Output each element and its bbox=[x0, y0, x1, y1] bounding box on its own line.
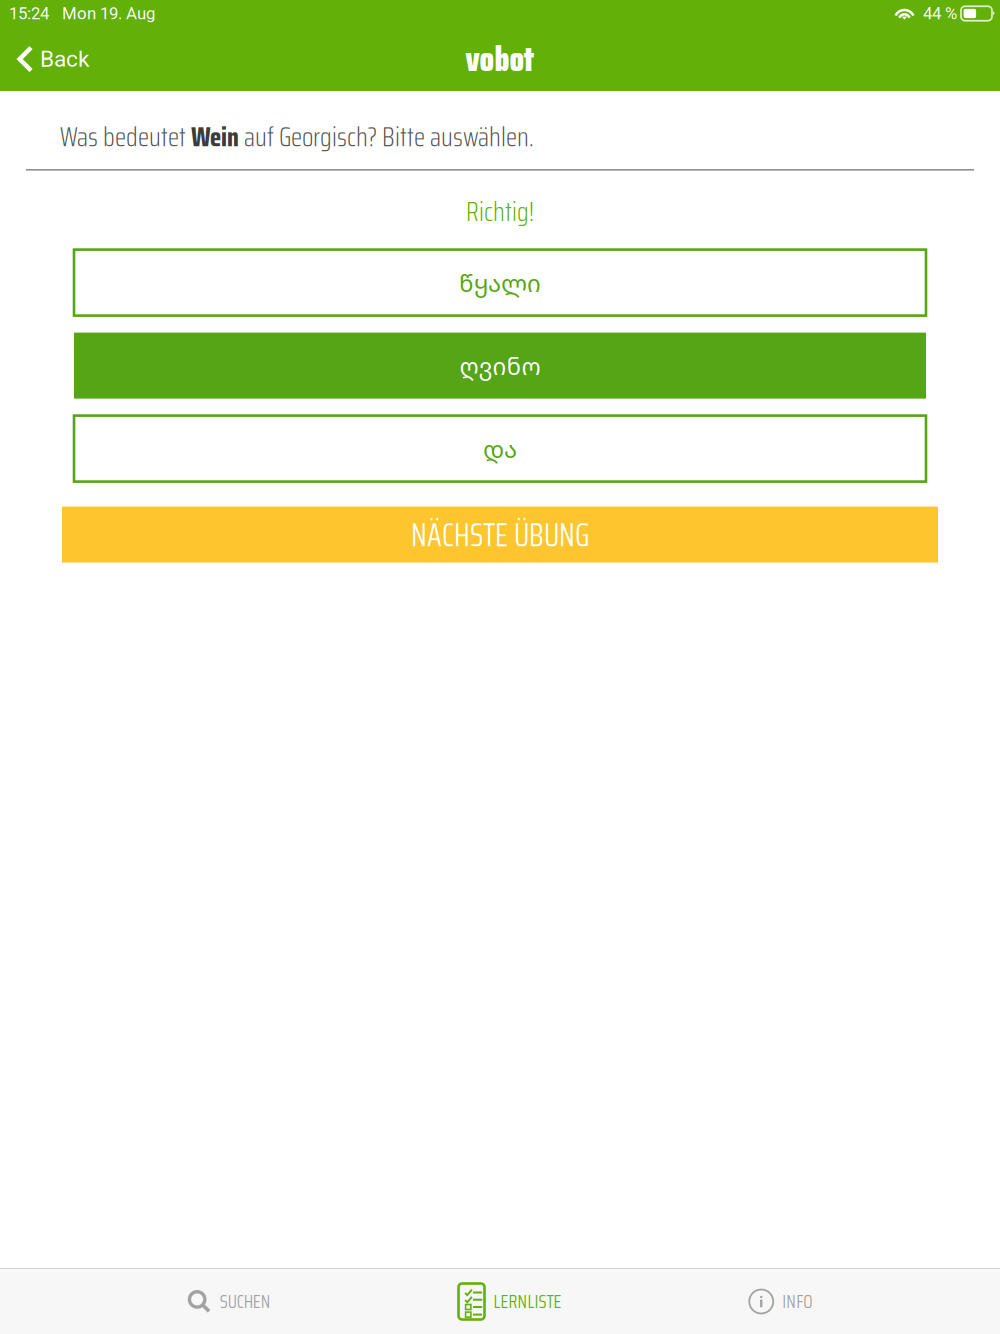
button[interactable]: NÄCHSTE ÜBUNG bbox=[62, 507, 938, 563]
staticText: vobot bbox=[465, 32, 534, 86]
staticText: INFO bbox=[782, 1287, 812, 1316]
staticText: LERNLISTE bbox=[493, 1287, 561, 1316]
button[interactable]: LERNLISTE bbox=[458, 1269, 561, 1334]
staticText: წყალი bbox=[459, 266, 541, 299]
button[interactable]: ღვინო bbox=[74, 333, 926, 399]
button[interactable]: წყალი bbox=[74, 250, 926, 316]
staticText: NÄCHSTE ÜBUNG bbox=[411, 508, 589, 561]
staticText: Was bedeutet bbox=[60, 116, 191, 158]
staticText: SUCHEN bbox=[220, 1287, 271, 1316]
staticText: Wein bbox=[191, 116, 239, 158]
button[interactable]: INFO bbox=[749, 1269, 812, 1334]
staticText: Richtig! bbox=[466, 191, 534, 233]
staticText: და bbox=[483, 432, 517, 465]
staticText: 15:24 bbox=[9, 4, 49, 23]
staticText: ღვინო bbox=[459, 349, 540, 382]
staticText: auf Georgisch? Bitte auswählen. bbox=[239, 116, 534, 158]
staticText: Mon 19. Aug bbox=[62, 4, 155, 23]
button[interactable]: და bbox=[74, 416, 926, 482]
staticText: Back bbox=[40, 46, 89, 72]
button[interactable]: SUCHEN bbox=[188, 1269, 271, 1334]
staticText: 44 % bbox=[923, 4, 957, 23]
button[interactable]: Back bbox=[0, 31, 101, 87]
